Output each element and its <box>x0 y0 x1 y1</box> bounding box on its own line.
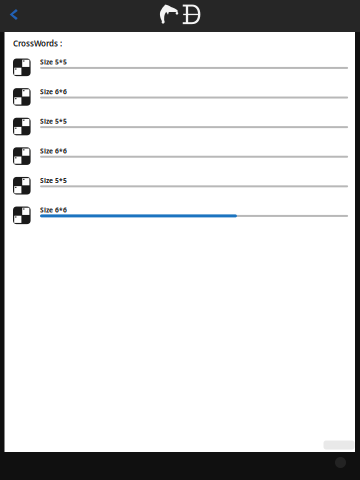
button[interactable]: Size 6*6 <box>13 82 355 111</box>
button[interactable]: Back <box>0 0 29 30</box>
button[interactable]: Size 6*6 <box>13 141 355 170</box>
staticText: Size 6*6 <box>40 146 67 155</box>
staticText: Size 5*5 <box>40 176 67 185</box>
button[interactable]: Size 5*5 <box>13 170 355 200</box>
button[interactable]: Size 5*5 <box>13 111 355 141</box>
staticText: Size 5*5 <box>40 58 67 66</box>
staticText: Size 6*6 <box>40 87 67 96</box>
staticText: Size 5*5 <box>40 117 67 126</box>
staticText: Size 6*6 <box>40 206 67 214</box>
staticText: CrossWords : <box>13 38 62 49</box>
button[interactable]: Size 6*6 <box>13 200 355 230</box>
button[interactable]: Size 5*5 <box>13 52 355 82</box>
